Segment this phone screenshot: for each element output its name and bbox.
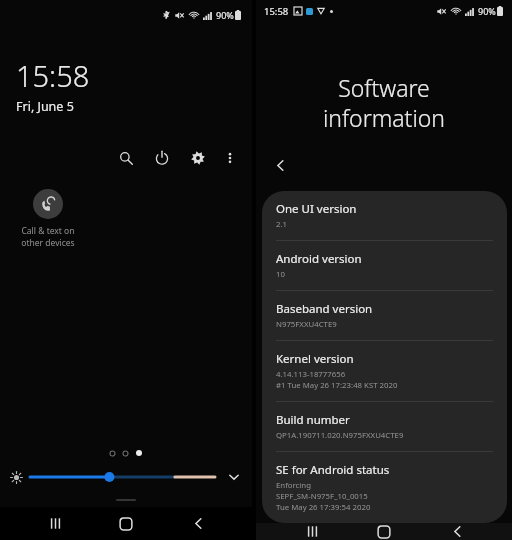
button[interactable]: Kernel version xyxy=(262,341,507,401)
button[interactable]: Call & text on other devices xyxy=(16,189,80,249)
staticText: Baseband version xyxy=(276,301,373,317)
staticText: N975FXXU4CTE9 xyxy=(276,319,337,330)
staticText: 15:58 xyxy=(16,56,90,95)
staticText: SE for Android status xyxy=(276,462,390,478)
button[interactable]: Back xyxy=(440,523,474,540)
staticText: Call & text on other devices xyxy=(21,225,75,249)
button[interactable]: Home xyxy=(367,523,401,540)
staticText: QP1A.190711.020.N975FXXU4CTE9 xyxy=(276,430,404,441)
staticText: 2.1 xyxy=(276,219,288,230)
button[interactable]: Settings xyxy=(185,145,211,171)
staticText: Android version xyxy=(276,251,362,267)
button[interactable]: Search xyxy=(113,145,139,171)
staticText: 90% xyxy=(478,5,496,17)
button[interactable]: Build number xyxy=(262,402,507,451)
button[interactable]: One UI version xyxy=(262,191,507,240)
staticText: Tue May 26 17:39:54 2020 xyxy=(276,502,371,513)
button[interactable]: Android version xyxy=(262,241,507,290)
button[interactable]: SE for Android status xyxy=(262,452,507,523)
button[interactable]: Brightness xyxy=(29,471,216,483)
button[interactable]: Recents xyxy=(295,523,329,540)
staticText: Build number xyxy=(276,412,350,428)
staticText: SEPF_SM-N975F_10_0015 xyxy=(276,491,368,502)
staticText: Enforcing xyxy=(276,480,311,491)
button[interactable]: Home xyxy=(109,507,143,540)
staticText: #1 Tue May 26 17:23:48 KST 2020 xyxy=(276,380,398,391)
button[interactable]: Power xyxy=(149,145,175,171)
button[interactable]: Expand xyxy=(224,467,244,487)
button[interactable]: Back xyxy=(181,507,215,540)
staticText: 10 xyxy=(276,269,285,280)
staticText: 90% xyxy=(216,9,234,21)
button[interactable]: Back xyxy=(268,153,292,177)
button[interactable]: Recents xyxy=(38,507,72,540)
staticText: Software information xyxy=(256,72,512,133)
staticText: Kernel version xyxy=(276,351,354,367)
staticText: One UI version xyxy=(276,201,357,217)
button[interactable]: Baseband version xyxy=(262,291,507,340)
button[interactable]: More options xyxy=(217,145,243,171)
staticText: Fri, June 5 xyxy=(16,98,74,115)
staticText: 4.14.113-18777656 xyxy=(276,369,346,380)
staticText: 15:58 xyxy=(264,5,289,18)
